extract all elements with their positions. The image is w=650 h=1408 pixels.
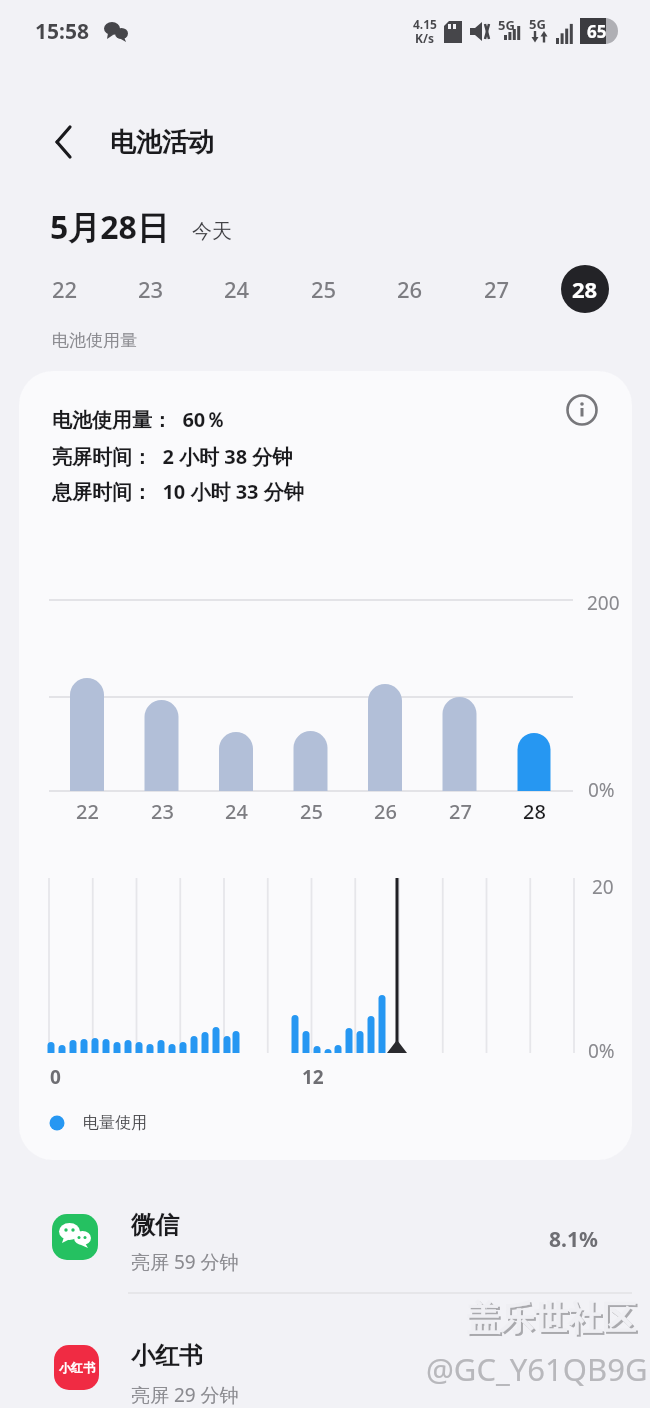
staticText: 电池使用量 (52, 330, 137, 351)
staticText: 8.1% (549, 1225, 598, 1254)
staticText: 26 (397, 274, 423, 304)
button[interactable]: 24 (209, 261, 265, 317)
staticText: 5G (529, 15, 546, 33)
staticText: 4.15 (413, 16, 437, 32)
staticText: 亮屏 59 分钟 (131, 1249, 239, 1275)
staticText: @GC_Y61QB9G (426, 1348, 648, 1390)
staticText: 盖乐世社区 (466, 1297, 636, 1340)
staticText: 200 (587, 590, 620, 616)
button[interactable] (0, 1315, 650, 1408)
button[interactable]: 26 (382, 261, 438, 317)
button[interactable]: 28 (561, 265, 609, 313)
staticText: 23 (151, 798, 174, 825)
staticText: 27 (449, 798, 472, 825)
staticText: 小红书 (131, 1341, 203, 1371)
staticText: 亮屏 29 分钟 (131, 1382, 239, 1408)
staticText: 小红书 (59, 1360, 95, 1375)
staticText: 20 (592, 874, 614, 900)
staticText: 息屏时间： 10 小时 33 分钟 (52, 478, 304, 505)
staticText: 0% (588, 1038, 615, 1064)
staticText: 5月28日 (50, 205, 169, 249)
staticText: 盖乐世社区 (468, 1299, 638, 1342)
staticText: 电量使用 (83, 1113, 147, 1133)
staticText: 微信 (131, 1210, 179, 1240)
staticText: 5G (498, 16, 515, 34)
staticText: 22 (76, 798, 99, 825)
staticText: 25 (311, 274, 337, 304)
button[interactable] (560, 388, 604, 432)
staticText: 0% (588, 777, 615, 803)
button[interactable]: 25 (296, 261, 352, 317)
staticText: 24 (225, 798, 248, 825)
button[interactable] (0, 1185, 650, 1295)
staticText: 26 (374, 798, 397, 825)
staticText: 0 (50, 1064, 61, 1090)
button[interactable]: 27 (469, 261, 525, 317)
button[interactable]: 22 (37, 261, 93, 317)
staticText: 28 (572, 274, 598, 304)
staticText: 27 (484, 274, 510, 304)
staticText: 电池使用量： 60％ (52, 406, 226, 433)
staticText: 电池活动 (110, 126, 214, 159)
staticText: 28 (523, 798, 546, 825)
staticText: K/s (415, 30, 434, 46)
staticText: 23 (138, 274, 164, 304)
staticText: 65 (587, 20, 607, 43)
staticText: 24 (224, 274, 250, 304)
staticText: 22 (52, 274, 78, 304)
staticText: 15:58 (35, 17, 89, 46)
button[interactable] (40, 118, 88, 166)
staticText: 25 (300, 798, 323, 825)
staticText: 亮屏时间： 2 小时 38 分钟 (52, 443, 293, 470)
staticText: 今天 (192, 219, 232, 244)
button[interactable]: 23 (123, 261, 179, 317)
staticText: 12 (302, 1064, 324, 1090)
